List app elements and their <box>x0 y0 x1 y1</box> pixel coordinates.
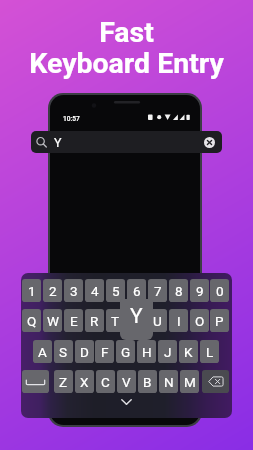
staticText: K <box>184 344 193 360</box>
button[interactable]: B <box>138 370 157 393</box>
staticText: Z <box>59 374 68 390</box>
staticText: O <box>195 313 205 329</box>
staticText: J <box>164 344 172 360</box>
button[interactable]: Space <box>22 370 49 393</box>
button[interactable]: C <box>96 370 115 393</box>
button[interactable]: E <box>64 309 83 332</box>
button[interactable]: O <box>190 309 209 332</box>
button[interactable]: 8 <box>169 279 188 302</box>
staticText: X <box>80 374 89 390</box>
other: Search <box>35 136 48 149</box>
staticText: L <box>206 344 214 360</box>
staticText: F <box>101 344 109 360</box>
button[interactable]: N <box>159 370 178 393</box>
button[interactable]: X <box>75 370 94 393</box>
button[interactable]: 6 <box>127 279 146 302</box>
staticText: Keyboard Entry <box>29 47 224 80</box>
button[interactable]: 7 <box>148 279 167 302</box>
button[interactable]: Q <box>22 309 41 332</box>
button[interactable]: 2 <box>43 279 62 302</box>
button[interactable]: D <box>75 340 94 363</box>
staticText: D <box>80 344 89 360</box>
staticText: 3 <box>70 283 78 299</box>
staticText: U <box>153 313 162 329</box>
button[interactable]: 4 <box>85 279 104 302</box>
button[interactable]: Backspace <box>202 370 229 393</box>
button[interactable]: H <box>137 340 156 363</box>
staticText: 4 <box>91 283 99 299</box>
staticText: G <box>121 344 131 360</box>
staticText: S <box>59 344 68 360</box>
staticText: 8 <box>175 283 183 299</box>
staticText: 7 <box>154 283 162 299</box>
staticText: H <box>142 344 152 360</box>
staticText: I <box>177 313 181 329</box>
button[interactable]: Z <box>54 370 73 393</box>
button[interactable]: Clear text <box>204 137 215 148</box>
staticText: A <box>38 344 47 360</box>
staticText: M <box>184 374 196 390</box>
staticText: V <box>122 374 131 390</box>
staticText: 9 <box>196 283 204 299</box>
button[interactable]: L <box>200 340 219 363</box>
staticText: Y <box>132 313 141 329</box>
staticText: 0 <box>216 283 224 299</box>
button[interactable]: I <box>169 309 188 332</box>
button[interactable]: J <box>158 340 177 363</box>
button[interactable]: 3 <box>64 279 83 302</box>
button[interactable]: Y <box>127 309 146 332</box>
staticText: 5 <box>112 283 120 299</box>
button[interactable]: T <box>106 309 125 332</box>
staticText: Y <box>130 304 143 329</box>
staticText: C <box>101 374 110 390</box>
button[interactable]: G <box>116 340 135 363</box>
button[interactable]: W <box>43 309 62 332</box>
button[interactable]: U <box>148 309 167 332</box>
button[interactable]: 5 <box>106 279 125 302</box>
staticText: N <box>164 374 174 390</box>
staticText: R <box>90 313 99 329</box>
button[interactable]: 0 <box>210 279 229 302</box>
staticText: Y <box>54 135 62 150</box>
button[interactable]: F <box>95 340 114 363</box>
staticText: 2 <box>49 283 57 299</box>
button[interactable]: S <box>54 340 73 363</box>
button[interactable]: A <box>33 340 52 363</box>
staticText: E <box>70 313 78 329</box>
button[interactable]: Hide keyboard <box>116 393 137 410</box>
staticText: Q <box>27 313 37 329</box>
button[interactable]: V <box>117 370 136 393</box>
staticText: P <box>215 313 224 329</box>
staticText: W <box>47 313 59 329</box>
button[interactable]: Search <box>31 131 222 153</box>
button[interactable]: 9 <box>190 279 209 302</box>
button[interactable]: 1 <box>22 279 41 302</box>
button[interactable]: P <box>210 309 229 332</box>
button[interactable]: R <box>85 309 104 332</box>
button[interactable]: M <box>180 370 199 393</box>
staticText: T <box>111 313 120 329</box>
staticText: 10:57 <box>63 115 80 123</box>
staticText: 6 <box>133 283 141 299</box>
staticText: Fast <box>99 16 154 49</box>
staticText: B <box>143 374 152 390</box>
button[interactable]: K <box>179 340 198 363</box>
staticText: 1 <box>28 283 36 299</box>
